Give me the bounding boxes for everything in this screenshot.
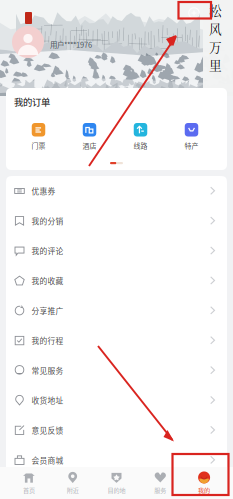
button[interactable]: 优惠券 — [6, 176, 227, 206]
button[interactable]: 我的 — [182, 467, 226, 499]
button[interactable]: 门票 — [13, 123, 64, 150]
button[interactable]: 服务 — [138, 467, 182, 499]
button[interactable]: 我的评论 — [6, 236, 227, 266]
staticText: 线路 — [133, 140, 147, 150]
staticText: 分享推广 — [31, 305, 63, 316]
staticText: 优惠券 — [31, 185, 55, 197]
button[interactable]: 目的地 — [95, 467, 138, 499]
staticText: 意见反馈 — [31, 425, 63, 436]
staticText: 我的收藏 — [31, 275, 63, 286]
button[interactable]: 收货地址 — [6, 385, 227, 415]
staticText: 我的分销 — [31, 215, 63, 226]
button[interactable]: 我的行程 — [6, 325, 227, 355]
button[interactable]: 首页 — [7, 467, 51, 499]
staticText: 松 风 万 里 — [209, 1, 222, 74]
staticText: 酒店 — [82, 140, 96, 150]
button[interactable]: 线路 — [115, 123, 166, 150]
button[interactable]: 我的分销 — [6, 206, 227, 236]
button[interactable]: 我的收藏 — [6, 266, 227, 296]
staticText: 我的订单 — [14, 95, 50, 108]
button[interactable]: 酒店 — [64, 123, 115, 150]
staticText: 目的地 — [107, 486, 125, 495]
staticText: 收货地址 — [31, 395, 63, 406]
staticText: 门票 — [31, 140, 45, 150]
staticText: 附近 — [67, 486, 79, 495]
button[interactable]: 会员商城 — [6, 445, 227, 475]
button[interactable]: 附近 — [51, 467, 95, 499]
staticText: 常见服务 — [31, 365, 63, 376]
button[interactable]: 特产 — [166, 123, 217, 150]
staticText: 首页 — [23, 486, 35, 495]
staticText: 我的行程 — [31, 335, 63, 346]
button[interactable]: 意见反馈 — [6, 415, 227, 445]
staticText: 特产 — [184, 140, 198, 150]
staticText: 用户****1976 — [50, 39, 92, 50]
staticText: 会员商城 — [31, 454, 63, 466]
button[interactable]: 设置 — [183, 2, 205, 24]
staticText: 我的评论 — [31, 245, 63, 256]
button[interactable]: 常见服务 — [6, 355, 227, 385]
staticText: 服务 — [154, 486, 166, 495]
staticText: 我的 — [198, 486, 210, 495]
button[interactable]: 分享推广 — [6, 296, 227, 325]
